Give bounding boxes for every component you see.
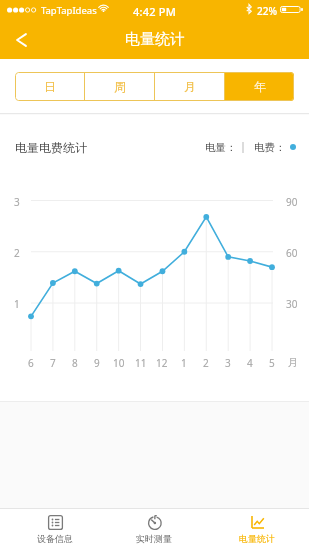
staticText: 9 xyxy=(94,356,100,370)
staticText: 日 xyxy=(44,79,56,94)
staticText: 60 xyxy=(286,246,298,260)
staticText: 11 xyxy=(135,356,147,370)
staticText: 7 xyxy=(50,356,56,370)
staticText: 电量： xyxy=(205,141,237,154)
staticText: 3 xyxy=(225,356,231,370)
staticText: 设备信息 xyxy=(37,533,73,544)
staticText: 90 xyxy=(286,195,298,209)
staticText: 3 xyxy=(14,195,20,209)
staticText: 月 xyxy=(288,356,298,369)
staticText: 6 xyxy=(28,356,34,370)
staticText: 电费： xyxy=(254,141,286,154)
staticText: 实时测量 xyxy=(136,533,172,544)
staticText: 1 xyxy=(14,297,20,311)
staticText: 电量统计 xyxy=(125,30,185,49)
button[interactable]: 年 xyxy=(225,72,294,101)
button[interactable]: 周 xyxy=(85,72,154,101)
staticText: 5 xyxy=(269,356,275,370)
staticText: 2 xyxy=(203,356,209,370)
staticText: 22% xyxy=(257,4,277,18)
staticText: 4 xyxy=(247,356,253,370)
button[interactable]: 实时测量 xyxy=(111,509,197,550)
staticText: 2 xyxy=(14,246,20,260)
staticText: 1 xyxy=(181,356,187,370)
staticText: 月 xyxy=(184,79,196,94)
staticText: 30 xyxy=(286,297,298,311)
staticText: 年 xyxy=(254,79,266,94)
staticText: 4:42 PM xyxy=(133,4,176,19)
button[interactable]: 设备信息 xyxy=(12,509,98,550)
staticText: 10 xyxy=(113,356,125,370)
staticText: TapTapIdeas xyxy=(41,4,97,17)
button[interactable]: 月 xyxy=(155,72,224,101)
staticText: 8 xyxy=(72,356,78,370)
button[interactable]: 电量统计 xyxy=(214,509,300,550)
button[interactable]: Back xyxy=(1,20,41,59)
staticText: 12 xyxy=(156,356,168,370)
staticText: 电量电费统计 xyxy=(15,140,87,154)
staticText: 周 xyxy=(114,79,126,94)
button[interactable]: 日 xyxy=(15,72,84,101)
staticText: 电量统计 xyxy=(239,533,275,544)
